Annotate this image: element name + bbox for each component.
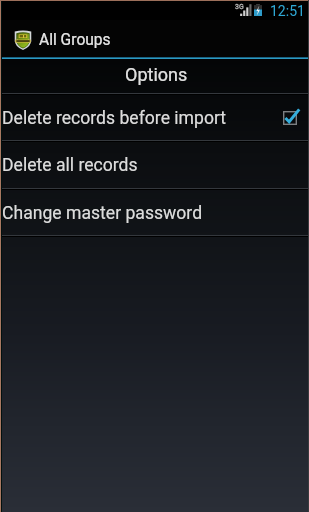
button[interactable]: Delete all records bbox=[0, 142, 309, 188]
staticText: Delete records before import bbox=[2, 108, 283, 129]
other: Delete records before import bbox=[283, 109, 301, 127]
staticText: 12:51 bbox=[270, 3, 305, 19]
button[interactable]: Delete records before import bbox=[0, 95, 309, 141]
staticText: Options bbox=[125, 64, 188, 85]
staticText: Change master password bbox=[2, 203, 301, 224]
staticText: 3G bbox=[235, 3, 244, 11]
staticText: All Groups bbox=[39, 31, 111, 49]
staticText: Delete all records bbox=[2, 155, 301, 176]
button[interactable]: Change master password bbox=[0, 190, 309, 236]
